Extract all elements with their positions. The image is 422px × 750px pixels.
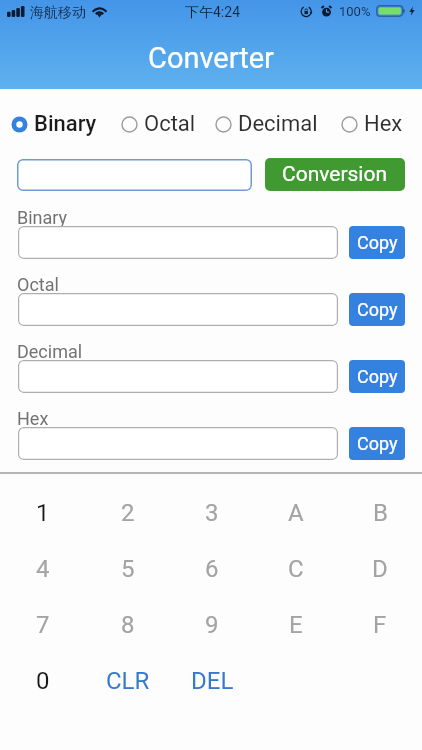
staticText: 3 <box>205 499 219 527</box>
staticText: CLR <box>106 667 150 695</box>
staticText: Copy <box>357 433 398 454</box>
button[interactable]: Binary <box>11 110 97 138</box>
button[interactable]: C <box>254 541 338 597</box>
button[interactable]: Octal <box>121 110 196 138</box>
staticText: 0 <box>36 667 50 695</box>
button[interactable]: Decimal <box>215 110 318 138</box>
button[interactable]: Hex result <box>18 427 338 460</box>
button[interactable]: F <box>338 597 422 653</box>
staticText: D <box>372 555 388 583</box>
staticText: 4 <box>36 555 50 583</box>
button[interactable]: 6 <box>170 541 254 597</box>
staticText: Conversion <box>282 162 388 187</box>
staticText: DEL <box>191 667 234 695</box>
staticText: 海航移动 <box>30 4 86 22</box>
staticText: Copy <box>357 299 398 320</box>
button[interactable]: B <box>338 485 422 541</box>
staticText: A <box>288 499 304 527</box>
button[interactable]: Decimal result <box>18 360 338 393</box>
staticText: Binary <box>34 111 97 137</box>
button[interactable]: Copy <box>349 360 405 393</box>
staticText: 7 <box>36 611 50 639</box>
staticText: Octal <box>17 274 59 295</box>
button[interactable]: 3 <box>170 485 254 541</box>
staticText: E <box>289 611 303 639</box>
staticText: Binary <box>17 207 68 228</box>
button[interactable]: Copy <box>349 293 405 326</box>
staticText: 8 <box>121 611 135 639</box>
button[interactable]: D <box>338 541 422 597</box>
staticText: C <box>288 555 304 583</box>
staticText: Copy <box>357 366 398 387</box>
button[interactable]: 5 <box>85 541 170 597</box>
staticText: Hex <box>17 408 49 429</box>
staticText: Decimal <box>238 111 318 137</box>
button[interactable]: 2 <box>85 485 170 541</box>
button[interactable]: Copy <box>349 226 405 259</box>
button[interactable]: 9 <box>170 597 254 653</box>
button[interactable]: E <box>254 597 338 653</box>
button[interactable]: 4 <box>0 541 85 597</box>
staticText: 5 <box>121 555 135 583</box>
button[interactable]: Octal result <box>18 293 338 326</box>
button[interactable]: Conversion <box>265 158 405 191</box>
staticText: 6 <box>205 555 219 583</box>
button[interactable]: 8 <box>85 597 170 653</box>
button[interactable]: 0 <box>0 653 85 709</box>
staticText: 9 <box>205 611 219 639</box>
staticText: 1 <box>36 499 50 527</box>
button[interactable]: CLR <box>85 653 170 709</box>
staticText: B <box>373 499 388 527</box>
staticText: 下午4:24 <box>185 4 240 22</box>
button[interactable]: Hex <box>341 110 403 138</box>
staticText: Copy <box>357 232 398 253</box>
button[interactable]: DEL <box>170 653 254 709</box>
button[interactable]: 1 <box>0 485 85 541</box>
staticText: 100% <box>339 4 371 19</box>
button[interactable]: Copy <box>349 427 405 460</box>
button[interactable]: A <box>254 485 338 541</box>
staticText: Converter <box>148 41 274 75</box>
staticText: 2 <box>121 499 135 527</box>
staticText: F <box>373 611 387 639</box>
button[interactable]: 7 <box>0 597 85 653</box>
staticText: Hex <box>364 111 403 137</box>
staticText: Octal <box>144 111 196 137</box>
staticText: Decimal <box>17 341 83 362</box>
button[interactable]: Input value <box>17 159 252 191</box>
button[interactable]: Binary result <box>18 226 338 259</box>
